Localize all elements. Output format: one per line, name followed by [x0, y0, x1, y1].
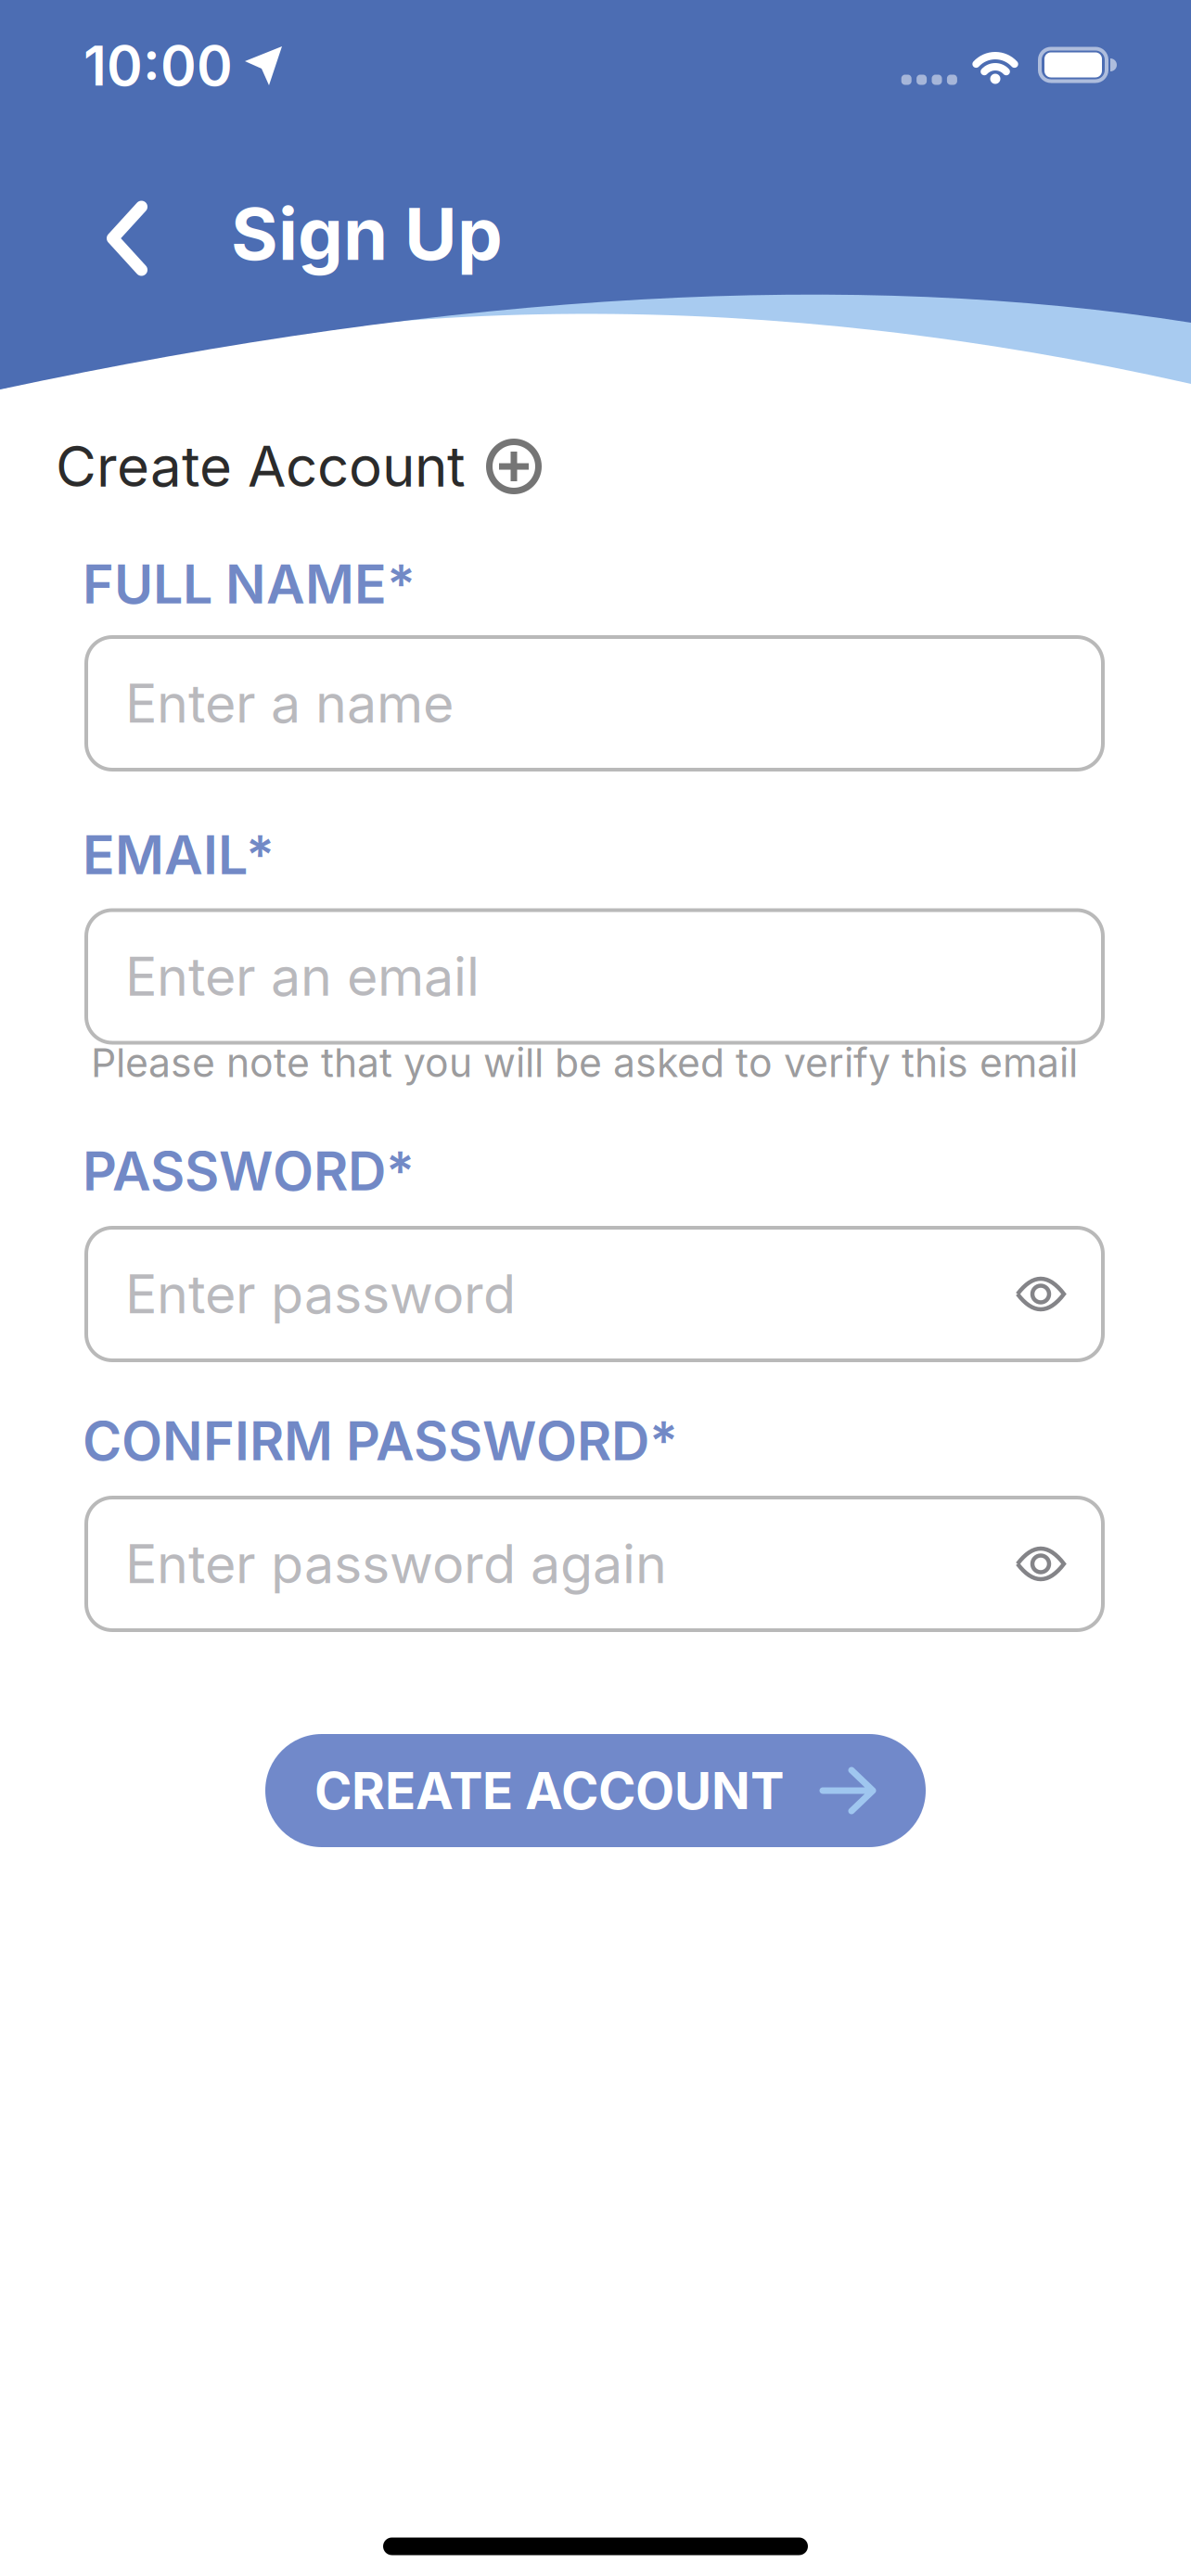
button[interactable]: Enter an email — [84, 908, 1105, 1045]
button[interactable]: Show password — [1016, 1276, 1066, 1312]
button[interactable]: Enter a name — [84, 635, 1105, 772]
staticText: Enter an email — [125, 945, 480, 1008]
staticText: Enter password again — [125, 1533, 667, 1595]
staticText: PASSWORD* — [83, 1140, 415, 1203]
staticText: Please note that you will be asked to ve… — [91, 1039, 1078, 1086]
staticText: CONFIRM PASSWORD* — [83, 1410, 678, 1472]
button[interactable]: Enter password again — [84, 1496, 1105, 1632]
staticText: Create Account — [56, 434, 466, 499]
button[interactable]: Back — [108, 204, 146, 273]
staticText: 10:00 — [83, 34, 233, 98]
button[interactable]: Enter password — [84, 1226, 1105, 1362]
button[interactable]: CREATE ACCOUNT — [265, 1734, 926, 1847]
staticText: Enter password — [125, 1263, 516, 1325]
staticText: FULL NAME* — [83, 553, 416, 616]
button[interactable]: Show password — [1016, 1546, 1066, 1581]
staticText: CREATE ACCOUNT — [314, 1761, 784, 1821]
staticText: Enter a name — [125, 672, 454, 735]
staticText: EMAIL* — [83, 824, 275, 886]
staticText: Sign Up — [231, 191, 503, 276]
